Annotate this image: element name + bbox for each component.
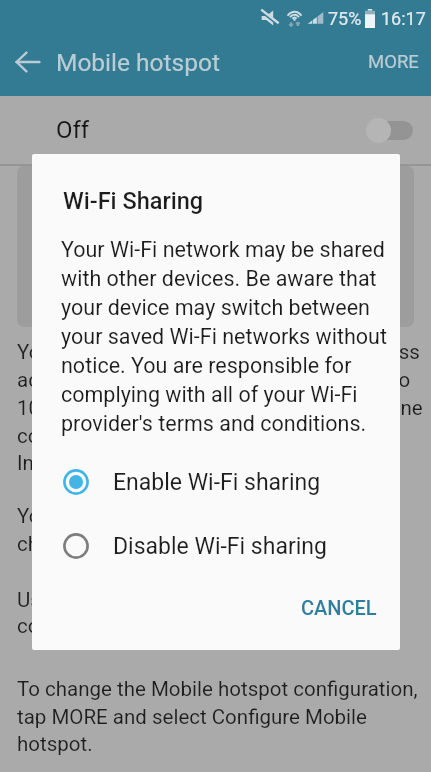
button[interactable]: Mobile hotspot toggle [365, 113, 413, 147]
staticText: CANCEL [301, 596, 377, 619]
staticText: Your Mobile hotspot password may be [17, 504, 367, 528]
button[interactable]: Off [0, 96, 431, 164]
staticText: 10 devices can connect at a time. Any ph… [17, 396, 423, 420]
staticText: Wi-Fi Sharing [63, 187, 204, 215]
button[interactable]: CANCEL [276, 582, 400, 633]
staticText: your saved Wi-Fi networks without [61, 324, 387, 349]
staticText: Your device may work as a portable wirel… [17, 340, 420, 364]
button[interactable]: Disable Wi-Fi sharing [32, 518, 400, 574]
staticText: Disable Wi-Fi sharing [113, 533, 327, 560]
staticText: 75% [328, 8, 362, 29]
staticText: provider's terms and conditions. [61, 411, 367, 436]
staticText: hotspot. [17, 732, 93, 756]
staticText: Use of the Mobile hotspot may add to [17, 588, 359, 612]
staticText: with other devices. Be aware that [61, 266, 377, 291]
staticText: Your Wi-Fi network may be shared [61, 237, 385, 262]
staticText: In this case: [17, 451, 126, 475]
staticText: MORE [368, 51, 419, 73]
button[interactable]: MORE [356, 33, 431, 91]
staticText: changed in settings. [17, 532, 201, 556]
staticText: complying with all of your Wi-Fi [61, 382, 358, 407]
staticText: Mobile hotspot [56, 48, 220, 77]
button[interactable]: Back [0, 34, 56, 90]
staticText: costs depending on your plan. [17, 614, 291, 638]
staticText: To change the Mobile hotspot configurati… [17, 677, 418, 701]
staticText: access point. It can support connections… [17, 368, 411, 392]
button[interactable]: Enable Wi-Fi sharing [32, 454, 400, 510]
staticText: Off [56, 116, 90, 144]
staticText: 16:17 [381, 8, 426, 29]
staticText: Enable Wi-Fi sharing [113, 469, 321, 496]
staticText: tap MORE and select Configure Mobile [17, 705, 367, 729]
staticText: notice. You are responsible for [61, 353, 352, 378]
staticText: connecting needs the password you set. [17, 424, 384, 448]
staticText: your device may switch between [61, 295, 370, 320]
